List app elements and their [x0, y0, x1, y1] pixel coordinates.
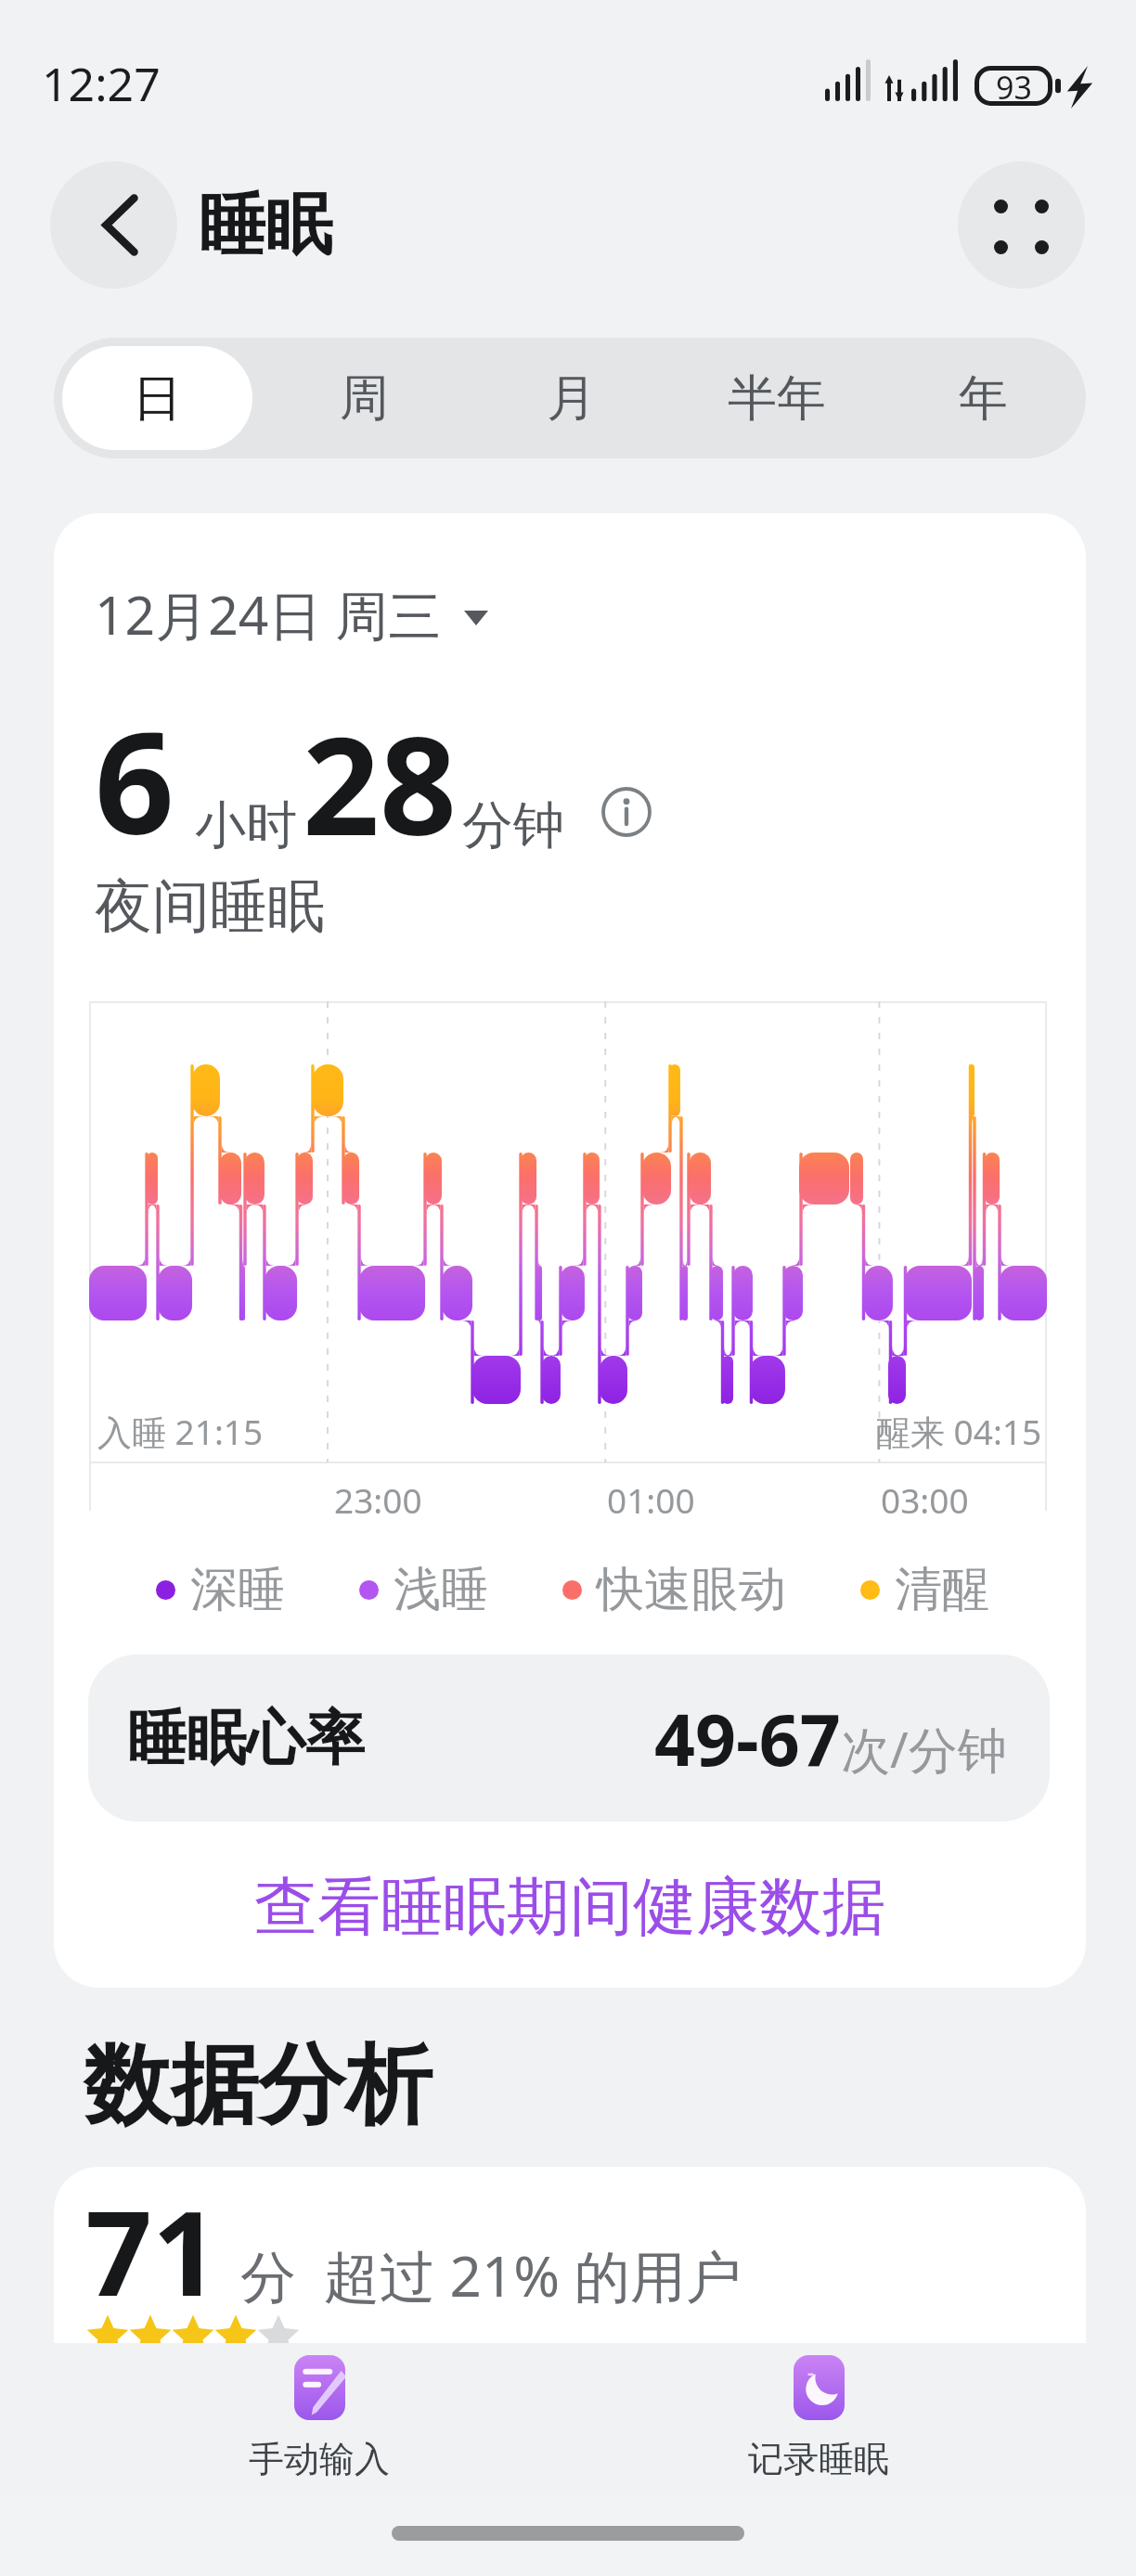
staticText: 日 — [133, 367, 182, 430]
staticText: 28 — [303, 691, 457, 874]
staticText: 周 — [340, 367, 389, 430]
staticText: 71 — [85, 2170, 220, 2330]
staticText: 49-67 — [654, 1690, 841, 1787]
button[interactable]: 查看睡眠期间健康数据 — [54, 1857, 1086, 1959]
staticText: 半年 — [728, 367, 826, 430]
button[interactable]: More options — [958, 161, 1085, 289]
staticText: 93 — [996, 66, 1032, 106]
button[interactable]: 周 — [261, 338, 468, 458]
staticText: 夜间睡眠 — [95, 870, 325, 943]
button[interactable]: 半年 — [674, 338, 880, 458]
staticText: 快速眼动 — [597, 1560, 786, 1619]
staticText: 年 — [959, 367, 1008, 430]
staticText: 03:00 — [881, 1476, 969, 1523]
button[interactable]: Back — [50, 161, 177, 289]
staticText: 12月24日 周三 — [95, 578, 442, 650]
staticText: 醒来 04:15 — [876, 1408, 1042, 1455]
staticText: 睡眠心率 — [127, 1701, 365, 1776]
button[interactable]: 手动输入 — [173, 2348, 466, 2489]
staticText: 月 — [547, 367, 596, 430]
staticText: 超过 21% 的用户 — [324, 2237, 742, 2313]
staticText: 23:00 — [334, 1476, 422, 1523]
button[interactable]: 年 — [880, 338, 1086, 458]
staticText: 入睡 21:15 — [97, 1408, 264, 1455]
staticText: 睡眠 — [199, 184, 332, 268]
staticText: 6 — [95, 685, 174, 874]
staticText: 记录睡眠 — [748, 2437, 889, 2481]
staticText: 12:27 — [42, 52, 161, 115]
button[interactable]: Info — [601, 787, 652, 837]
staticText: 深睡 — [190, 1560, 285, 1619]
button[interactable]: 月 — [468, 338, 674, 458]
staticText: 浅睡 — [394, 1560, 488, 1619]
staticText: 查看睡眠期间健康数据 — [254, 1868, 885, 1948]
staticText: 次/分钟 — [841, 1715, 1007, 1782]
staticText: 01:00 — [607, 1476, 695, 1523]
staticText: 清醒 — [895, 1560, 989, 1619]
button[interactable]: 记录睡眠 — [672, 2348, 965, 2489]
button[interactable]: 日 — [54, 338, 261, 458]
staticText: 分钟 — [462, 793, 564, 857]
button[interactable]: 睡眠心率 — [88, 1655, 1050, 1822]
staticText: 手动输入 — [249, 2437, 390, 2481]
staticText: 数据分析 — [84, 2030, 432, 2140]
staticText: 分 — [240, 2243, 296, 2313]
staticText: 小时 — [195, 793, 297, 857]
